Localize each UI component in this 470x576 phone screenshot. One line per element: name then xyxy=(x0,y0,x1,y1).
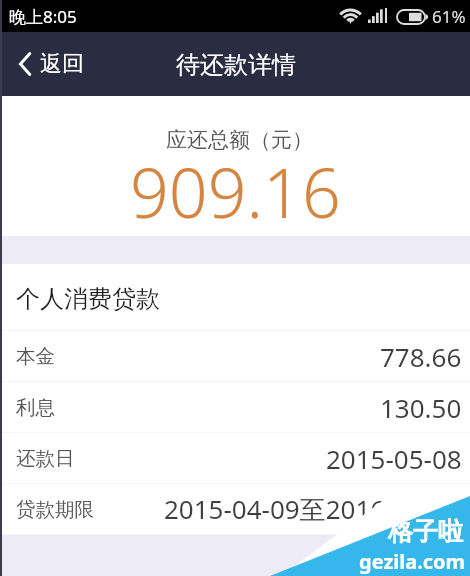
staticText: 778.66 xyxy=(380,339,462,374)
staticText: 返回 xyxy=(40,50,84,78)
staticText: 130.50 xyxy=(380,390,462,425)
staticText: gezila.com xyxy=(359,548,466,575)
staticText: 待还款详情 xyxy=(176,50,296,80)
other: Back xyxy=(19,52,31,76)
staticText: 本金 xyxy=(16,344,55,369)
button[interactable]: 利息 xyxy=(0,382,470,432)
staticText: 还款日 xyxy=(16,446,75,471)
button[interactable]: 贷款期限 xyxy=(0,484,470,534)
staticText: 应还总额（元） xyxy=(166,127,313,153)
button[interactable]: 还款日 xyxy=(0,433,470,483)
button[interactable]: Back xyxy=(0,32,100,96)
staticText: 贷款期限 xyxy=(16,497,94,522)
staticText: 个人消费贷款 xyxy=(16,284,160,314)
staticText: 晚上8:05 xyxy=(9,5,77,28)
staticText: 61% xyxy=(432,5,466,28)
button[interactable]: 本金 xyxy=(0,331,470,381)
staticText: 2015-04-09至2016-04-08 xyxy=(164,491,462,527)
staticText: 909.16 xyxy=(130,145,341,228)
staticText: 利息 xyxy=(16,395,55,420)
staticText: 格子啦 xyxy=(388,516,463,547)
staticText: 2015-05-08 xyxy=(326,441,462,476)
